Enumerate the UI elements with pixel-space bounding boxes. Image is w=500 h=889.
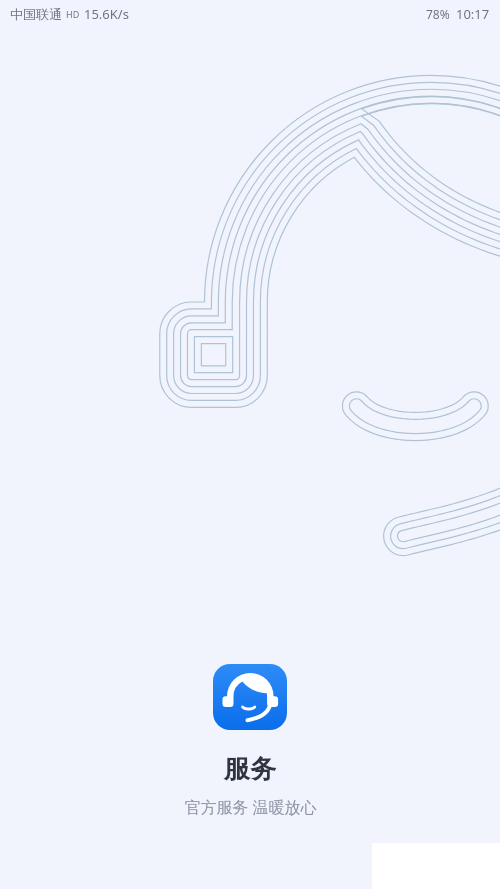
staticText: 78% <box>426 6 450 22</box>
staticText: 10:17 <box>456 5 490 23</box>
staticText: 中国联通 <box>10 6 62 22</box>
staticText: 官方服务 温暖放心 <box>184 796 317 818</box>
staticText: HD <box>66 8 80 20</box>
staticText: 服务 <box>224 753 276 786</box>
button[interactable]: 服务 <box>213 664 287 730</box>
staticText: 15.6K/s <box>84 5 129 23</box>
